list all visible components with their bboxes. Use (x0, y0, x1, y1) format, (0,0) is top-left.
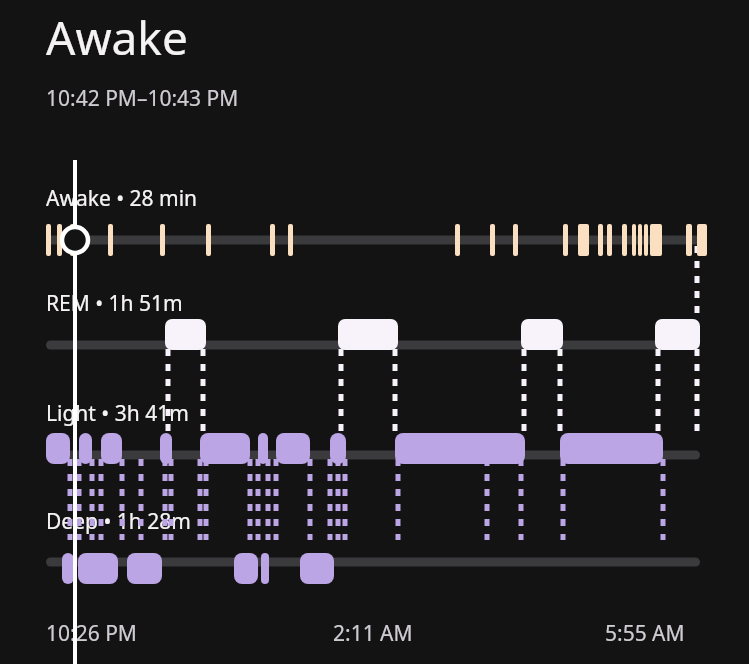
button[interactable]: Sleep stage chart, Awake 10:42 PM to 10:… (0, 0, 749, 664)
